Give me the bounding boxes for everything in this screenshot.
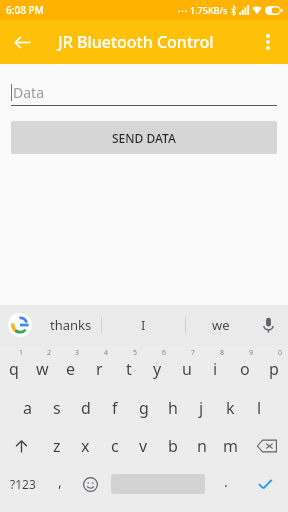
- button[interactable]: 1: [0, 345, 28, 389]
- button[interactable]: Backspace: [245, 427, 288, 465]
- button[interactable]: d: [71, 389, 100, 427]
- staticText: r: [96, 358, 103, 380]
- staticText: e: [66, 358, 76, 380]
- button[interactable]: n: [187, 427, 216, 465]
- staticText: ,: [58, 472, 62, 491]
- staticText: x: [81, 435, 90, 457]
- staticText: v: [139, 435, 148, 457]
- button[interactable]: f: [100, 389, 129, 427]
- button[interactable]: k: [216, 389, 245, 427]
- staticText: u: [182, 358, 192, 380]
- staticText: 2: [47, 348, 52, 358]
- staticText: k: [226, 397, 235, 419]
- button[interactable]: 6: [143, 345, 172, 389]
- staticText: d: [81, 397, 91, 419]
- button[interactable]: Data: [11, 78, 277, 106]
- staticText: l: [257, 397, 262, 419]
- button[interactable]: c: [100, 427, 129, 465]
- button[interactable]: Emoji: [74, 465, 106, 503]
- button[interactable]: m: [216, 427, 245, 465]
- button[interactable]: SEND DATA: [11, 121, 277, 154]
- staticText: 0: [278, 348, 283, 358]
- staticText: n: [197, 435, 207, 457]
- staticText: t: [126, 358, 132, 380]
- button[interactable]: Back: [4, 24, 40, 60]
- staticText: q: [9, 358, 19, 380]
- staticText: h: [168, 397, 178, 419]
- staticText: 1: [19, 348, 24, 358]
- staticText: thanks: [50, 316, 92, 334]
- button[interactable]: Voice input: [255, 312, 281, 338]
- button[interactable]: 7: [172, 345, 201, 389]
- staticText: .: [224, 472, 228, 491]
- staticText: f: [112, 397, 118, 419]
- staticText: JR Bluetooth Control: [58, 31, 214, 53]
- staticText: 7: [191, 348, 196, 358]
- button[interactable]: a: [13, 389, 42, 427]
- staticText: 6: [162, 348, 167, 358]
- button[interactable]: 3: [56, 345, 85, 389]
- button[interactable]: g: [129, 389, 158, 427]
- button[interactable]: 0: [259, 345, 288, 389]
- staticText: 1.75KB/s: [190, 4, 228, 16]
- staticText: 3: [75, 348, 80, 358]
- staticText: y: [153, 358, 162, 380]
- button[interactable]: 9: [230, 345, 259, 389]
- staticText: m: [223, 435, 238, 457]
- staticText: j: [199, 397, 204, 419]
- button[interactable]: ?123: [0, 465, 46, 503]
- button[interactable]: z: [42, 427, 71, 465]
- staticText: 5: [133, 348, 138, 358]
- button[interactable]: 5: [114, 345, 143, 389]
- button[interactable]: Google search: [8, 313, 32, 337]
- button[interactable]: .: [210, 465, 242, 503]
- button[interactable]: s: [42, 389, 71, 427]
- staticText: s: [53, 397, 61, 419]
- staticText: o: [240, 358, 250, 380]
- staticText: c: [111, 435, 119, 457]
- staticText: Data: [13, 83, 44, 102]
- staticText: w: [36, 358, 49, 380]
- button[interactable]: I: [102, 305, 185, 345]
- staticText: 6:08 PM: [6, 3, 44, 17]
- button[interactable]: 2: [28, 345, 56, 389]
- staticText: SEND DATA: [112, 130, 176, 146]
- button[interactable]: l: [245, 389, 274, 427]
- staticText: p: [269, 358, 279, 380]
- button[interactable]: b: [158, 427, 187, 465]
- staticText: ?123: [10, 476, 36, 492]
- button[interactable]: v: [129, 427, 158, 465]
- staticText: i: [213, 358, 218, 380]
- staticText: we: [212, 316, 230, 334]
- staticText: z: [53, 435, 61, 457]
- button[interactable]: j: [187, 389, 216, 427]
- button[interactable]: 4: [85, 345, 114, 389]
- staticText: 8: [220, 348, 225, 358]
- staticText: 9: [249, 348, 254, 358]
- staticText: g: [139, 397, 149, 419]
- button[interactable]: 8: [201, 345, 230, 389]
- button[interactable]: h: [158, 389, 187, 427]
- button[interactable]: thanks: [40, 305, 101, 345]
- button[interactable]: we: [186, 305, 256, 345]
- button[interactable]: x: [71, 427, 100, 465]
- button[interactable]: Shift: [0, 427, 42, 465]
- staticText: I: [141, 316, 146, 334]
- button[interactable]: Enter: [242, 465, 288, 503]
- staticText: 4: [104, 348, 109, 358]
- staticText: b: [168, 435, 178, 457]
- button[interactable]: ,: [46, 465, 74, 503]
- staticText: a: [23, 397, 32, 419]
- button[interactable]: More options: [250, 24, 286, 60]
